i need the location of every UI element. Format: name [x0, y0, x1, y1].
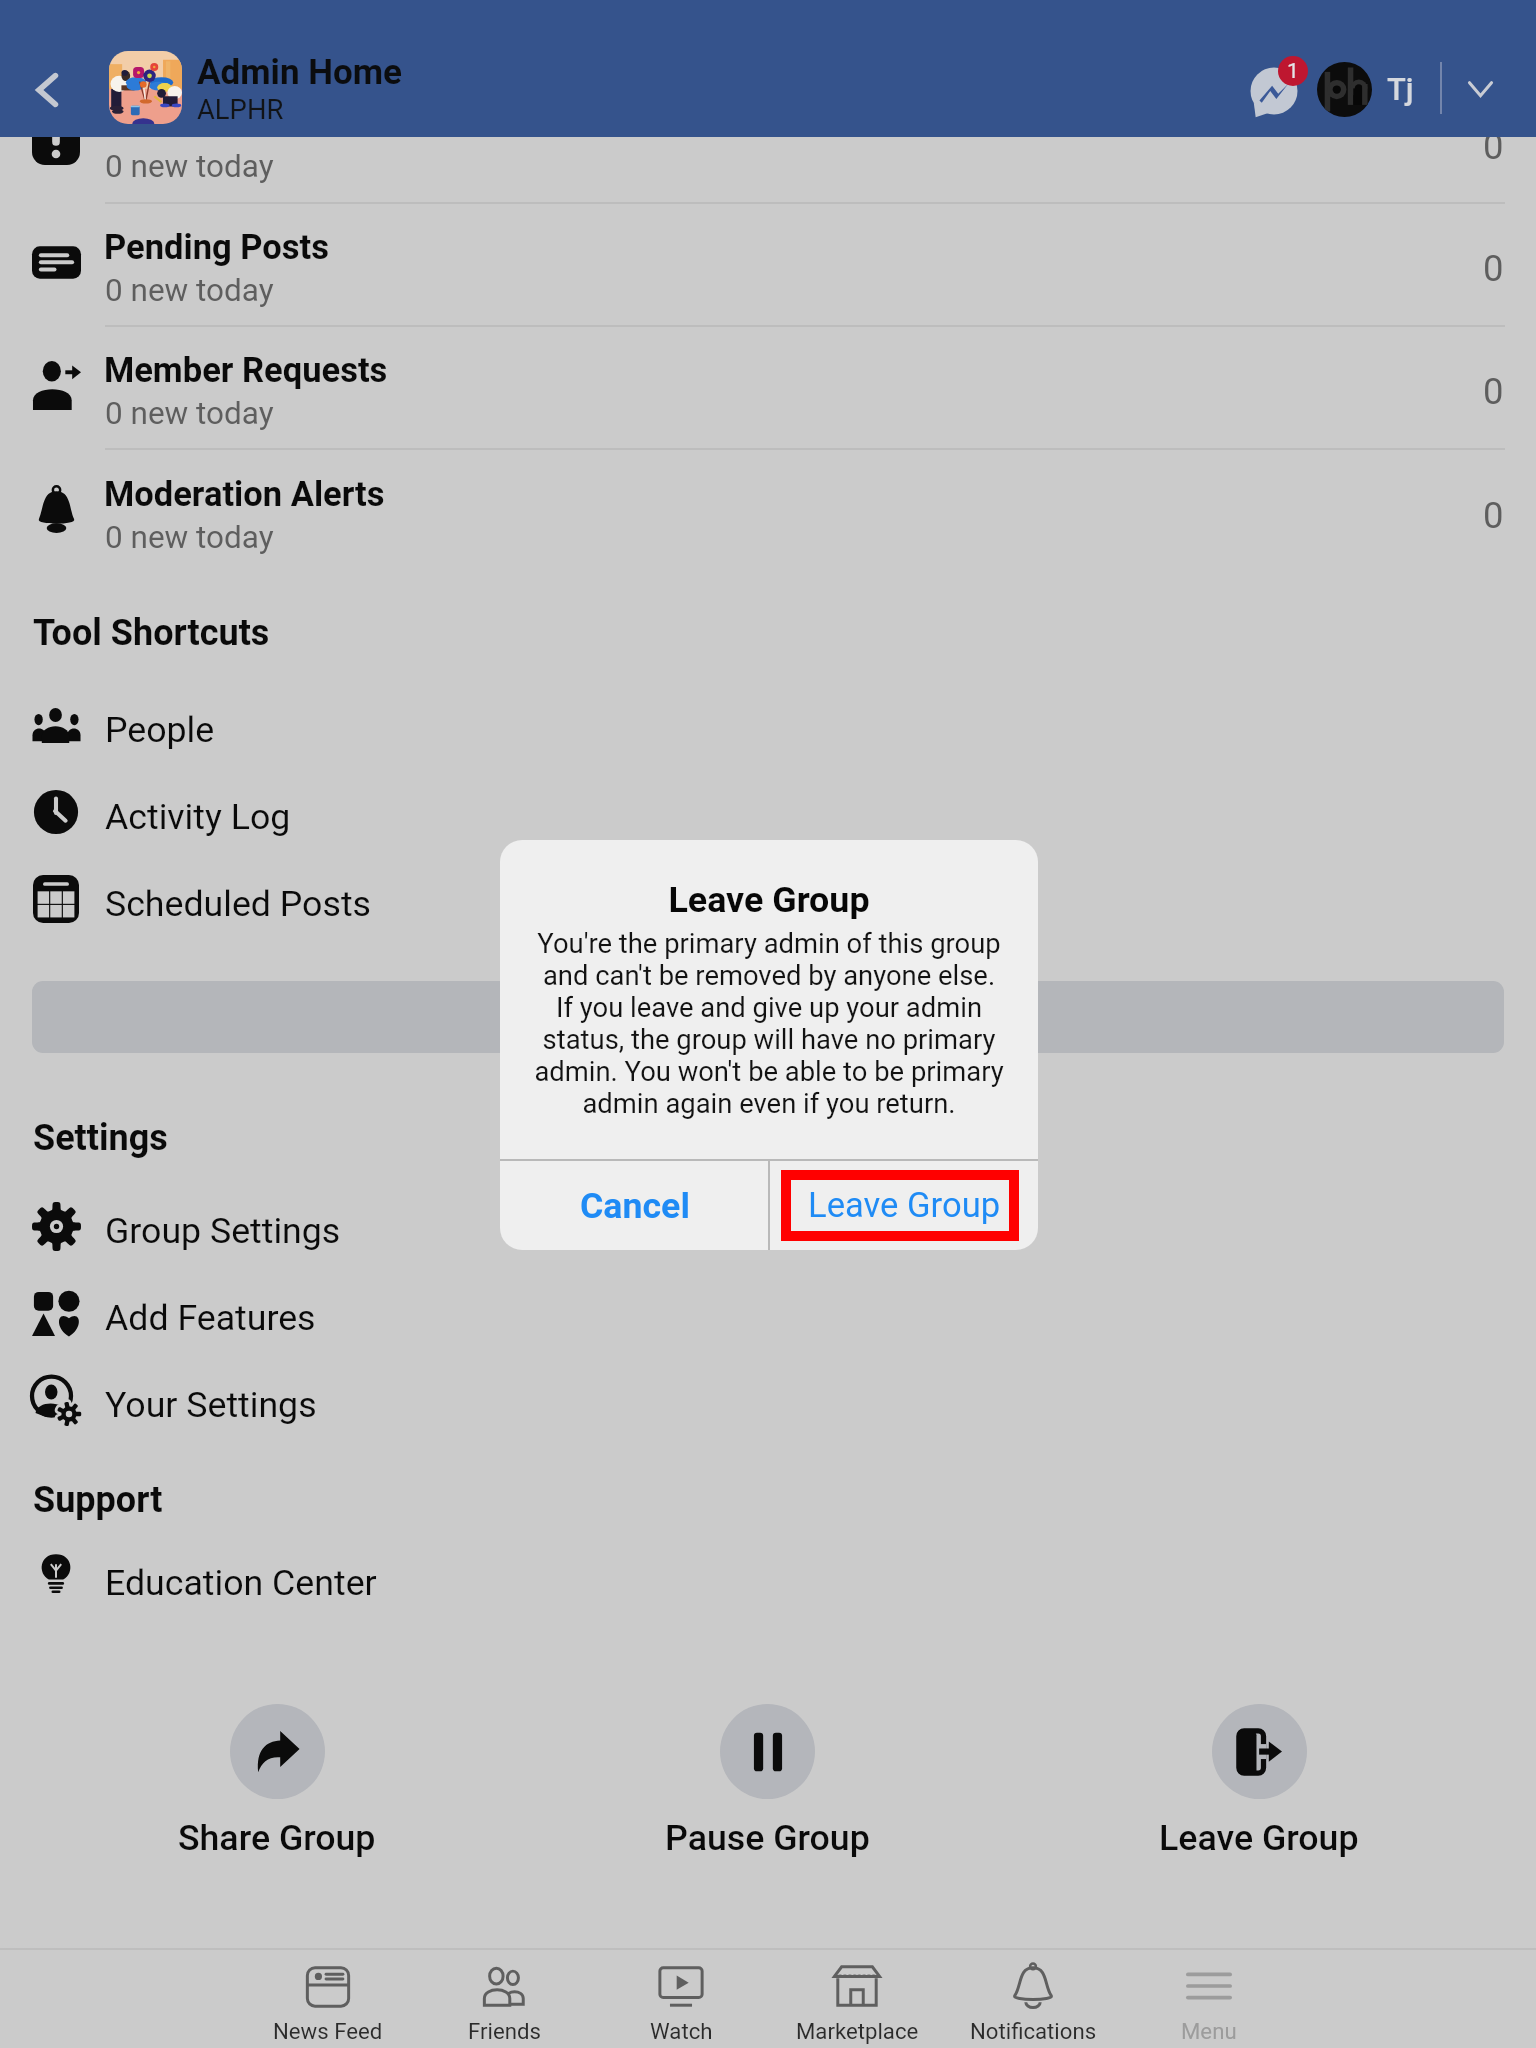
staticText: Tj: [1387, 71, 1414, 107]
staticText: Friends: [468, 2018, 541, 2044]
staticText: Notifications: [970, 2018, 1097, 2044]
staticText: 0 new today: [105, 272, 274, 309]
staticText: Menu: [1181, 2018, 1237, 2044]
staticText: 0: [1483, 494, 1504, 537]
staticText: Activity Log: [105, 796, 291, 838]
staticText: Cancel: [580, 1185, 690, 1227]
staticText: 1: [1287, 59, 1299, 84]
button[interactable]: Friends: [416, 1950, 593, 2048]
button[interactable]: Your Settings: [0, 1358, 1536, 1442]
button[interactable]: Notifications: [945, 1950, 1121, 2048]
staticText: Education Center: [105, 1562, 377, 1604]
staticText: Group Settings: [105, 1210, 341, 1252]
staticText: 0 new today: [105, 148, 274, 185]
staticText: Pending Posts: [104, 227, 329, 267]
button[interactable]: Watch: [593, 1950, 769, 2048]
button[interactable]: 0 new today: [0, 137, 1536, 204]
staticText: 0: [1483, 125, 1504, 168]
staticText: Scheduled Posts: [105, 883, 371, 925]
button[interactable]: Education Center: [0, 1536, 1536, 1620]
staticText: Watch: [650, 2018, 713, 2044]
button[interactable]: Activity Log: [0, 770, 1536, 854]
staticText: People: [105, 709, 215, 751]
staticText: Support: [33, 1479, 163, 1521]
staticText: 0: [1483, 370, 1504, 413]
staticText: Share Group: [178, 1817, 376, 1859]
button[interactable]: Add Features: [0, 1271, 1536, 1355]
staticText: Leave Group: [1159, 1817, 1359, 1859]
staticText: 0 new today: [105, 395, 274, 432]
staticText: You're the primary admin of this group a…: [534, 928, 1004, 1120]
staticText: Pause Group: [665, 1817, 870, 1859]
button[interactable]: Cancel: [500, 1161, 769, 1250]
button[interactable]: Back: [8, 44, 86, 136]
button[interactable]: Member Requests: [0, 325, 1536, 450]
staticText: Settings: [33, 1117, 168, 1159]
button[interactable]: News Feed: [239, 1950, 416, 2048]
staticText: Your Settings: [105, 1384, 317, 1426]
button[interactable]: Leave Group: [770, 1161, 1038, 1250]
staticText: Leave Group: [500, 879, 1038, 921]
staticText: Admin Home: [197, 52, 402, 93]
staticText: 0 new today: [105, 519, 274, 556]
button[interactable]: Pause Group: [607, 1704, 927, 1864]
staticText: ALPHR: [197, 94, 284, 126]
staticText: Leave Group: [808, 1185, 1001, 1226]
staticText: Tool Shortcuts: [33, 612, 270, 654]
button[interactable]: Profile: [1317, 62, 1372, 117]
button[interactable]: Group Settings: [0, 1184, 1536, 1268]
staticText: Moderation Alerts: [104, 474, 385, 514]
button[interactable]: Share Group: [117, 1704, 437, 1864]
button[interactable]: Pending Posts: [0, 202, 1536, 327]
button[interactable]: Marketplace: [769, 1950, 945, 2048]
button[interactable]: Moderation Alerts: [0, 449, 1536, 572]
button[interactable]: Leave Group: [1099, 1704, 1419, 1864]
button[interactable]: People: [0, 683, 1536, 767]
staticText: News Feed: [273, 2018, 383, 2044]
staticText: 0: [1483, 247, 1504, 290]
staticText: Add Features: [105, 1297, 316, 1339]
button[interactable]: Messenger: [1243, 48, 1319, 128]
staticText: Member Requests: [104, 350, 388, 390]
staticText: Marketplace: [796, 2018, 919, 2044]
button[interactable]: Account menu: [1440, 48, 1520, 128]
button[interactable]: Scheduled Posts: [0, 857, 1536, 941]
button[interactable]: Menu: [1121, 1950, 1297, 2048]
